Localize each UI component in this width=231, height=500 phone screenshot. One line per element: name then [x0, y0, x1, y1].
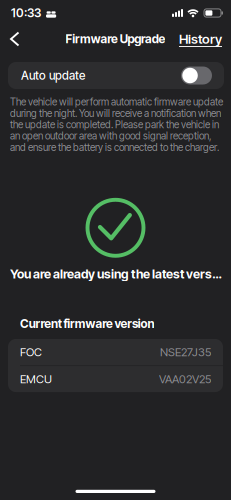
- staticText: EMCU: [20, 372, 52, 386]
- staticText: NSE27J35: [160, 345, 211, 359]
- staticText: VAA02V25: [159, 372, 211, 386]
- staticText: You are already using the latest vers...: [10, 266, 223, 281]
- staticText: the update is completed. Please park the…: [10, 119, 219, 131]
- staticText: 10:33: [11, 6, 41, 20]
- staticText: History: [179, 31, 222, 47]
- button[interactable]: EMCU: [8, 366, 223, 392]
- staticText: during the night. You will receive a not…: [10, 107, 221, 119]
- button[interactable]: History: [179, 31, 231, 47]
- staticText: and ensure the battery is connected to t…: [10, 141, 219, 153]
- staticText: Firmware Upgrade: [65, 32, 165, 46]
- button[interactable]: [0, 32, 18, 45]
- button[interactable]: Auto update: [0, 62, 231, 89]
- staticText: an open outdoor area with good signal re…: [10, 130, 211, 142]
- staticText: Current firmware version: [20, 316, 154, 331]
- staticText: FOC: [20, 345, 42, 359]
- button[interactable]: FOC: [8, 339, 223, 365]
- staticText: The vehicle will perform automatic firmw…: [10, 96, 223, 108]
- staticText: Auto update: [21, 68, 85, 83]
